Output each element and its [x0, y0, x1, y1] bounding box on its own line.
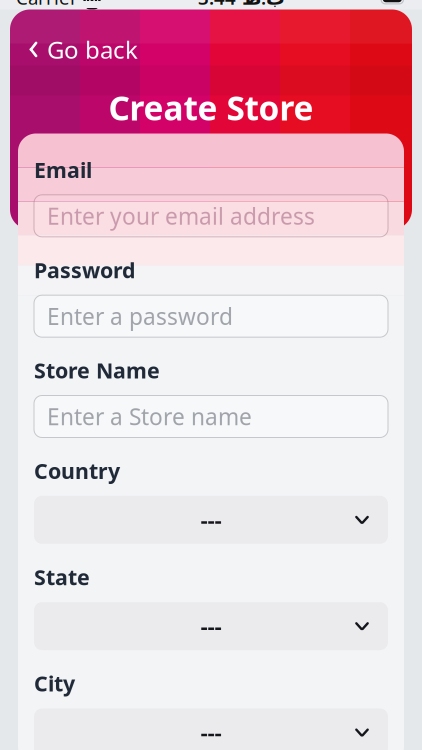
button[interactable]: Enter your email address	[34, 195, 388, 237]
button[interactable]: ---	[34, 602, 388, 650]
staticText: Email	[34, 155, 92, 184]
staticText: Enter your email address	[47, 201, 315, 231]
staticText: ---	[200, 717, 221, 747]
staticText: Store Name	[34, 356, 160, 384]
staticText: Enter a Store name	[47, 401, 252, 431]
staticText: State	[34, 563, 90, 591]
button[interactable]: Go back	[10, 27, 138, 71]
staticText: Go back	[47, 33, 138, 65]
staticText: ---	[200, 611, 221, 641]
staticText: Carrier	[16, 0, 78, 10]
staticText: City	[34, 669, 75, 697]
staticText: ---	[200, 505, 221, 535]
staticText: Password	[34, 256, 135, 284]
staticText: Enter a password	[47, 301, 233, 331]
button[interactable]: ---	[34, 708, 388, 750]
button[interactable]: Enter a Store name	[34, 395, 388, 437]
button[interactable]: Enter a password	[34, 295, 388, 337]
button[interactable]: ---	[34, 496, 388, 544]
staticText: Country	[34, 456, 120, 485]
staticText: ب.ظ 3:44	[198, 0, 285, 10]
staticText: Create Store	[108, 85, 313, 130]
